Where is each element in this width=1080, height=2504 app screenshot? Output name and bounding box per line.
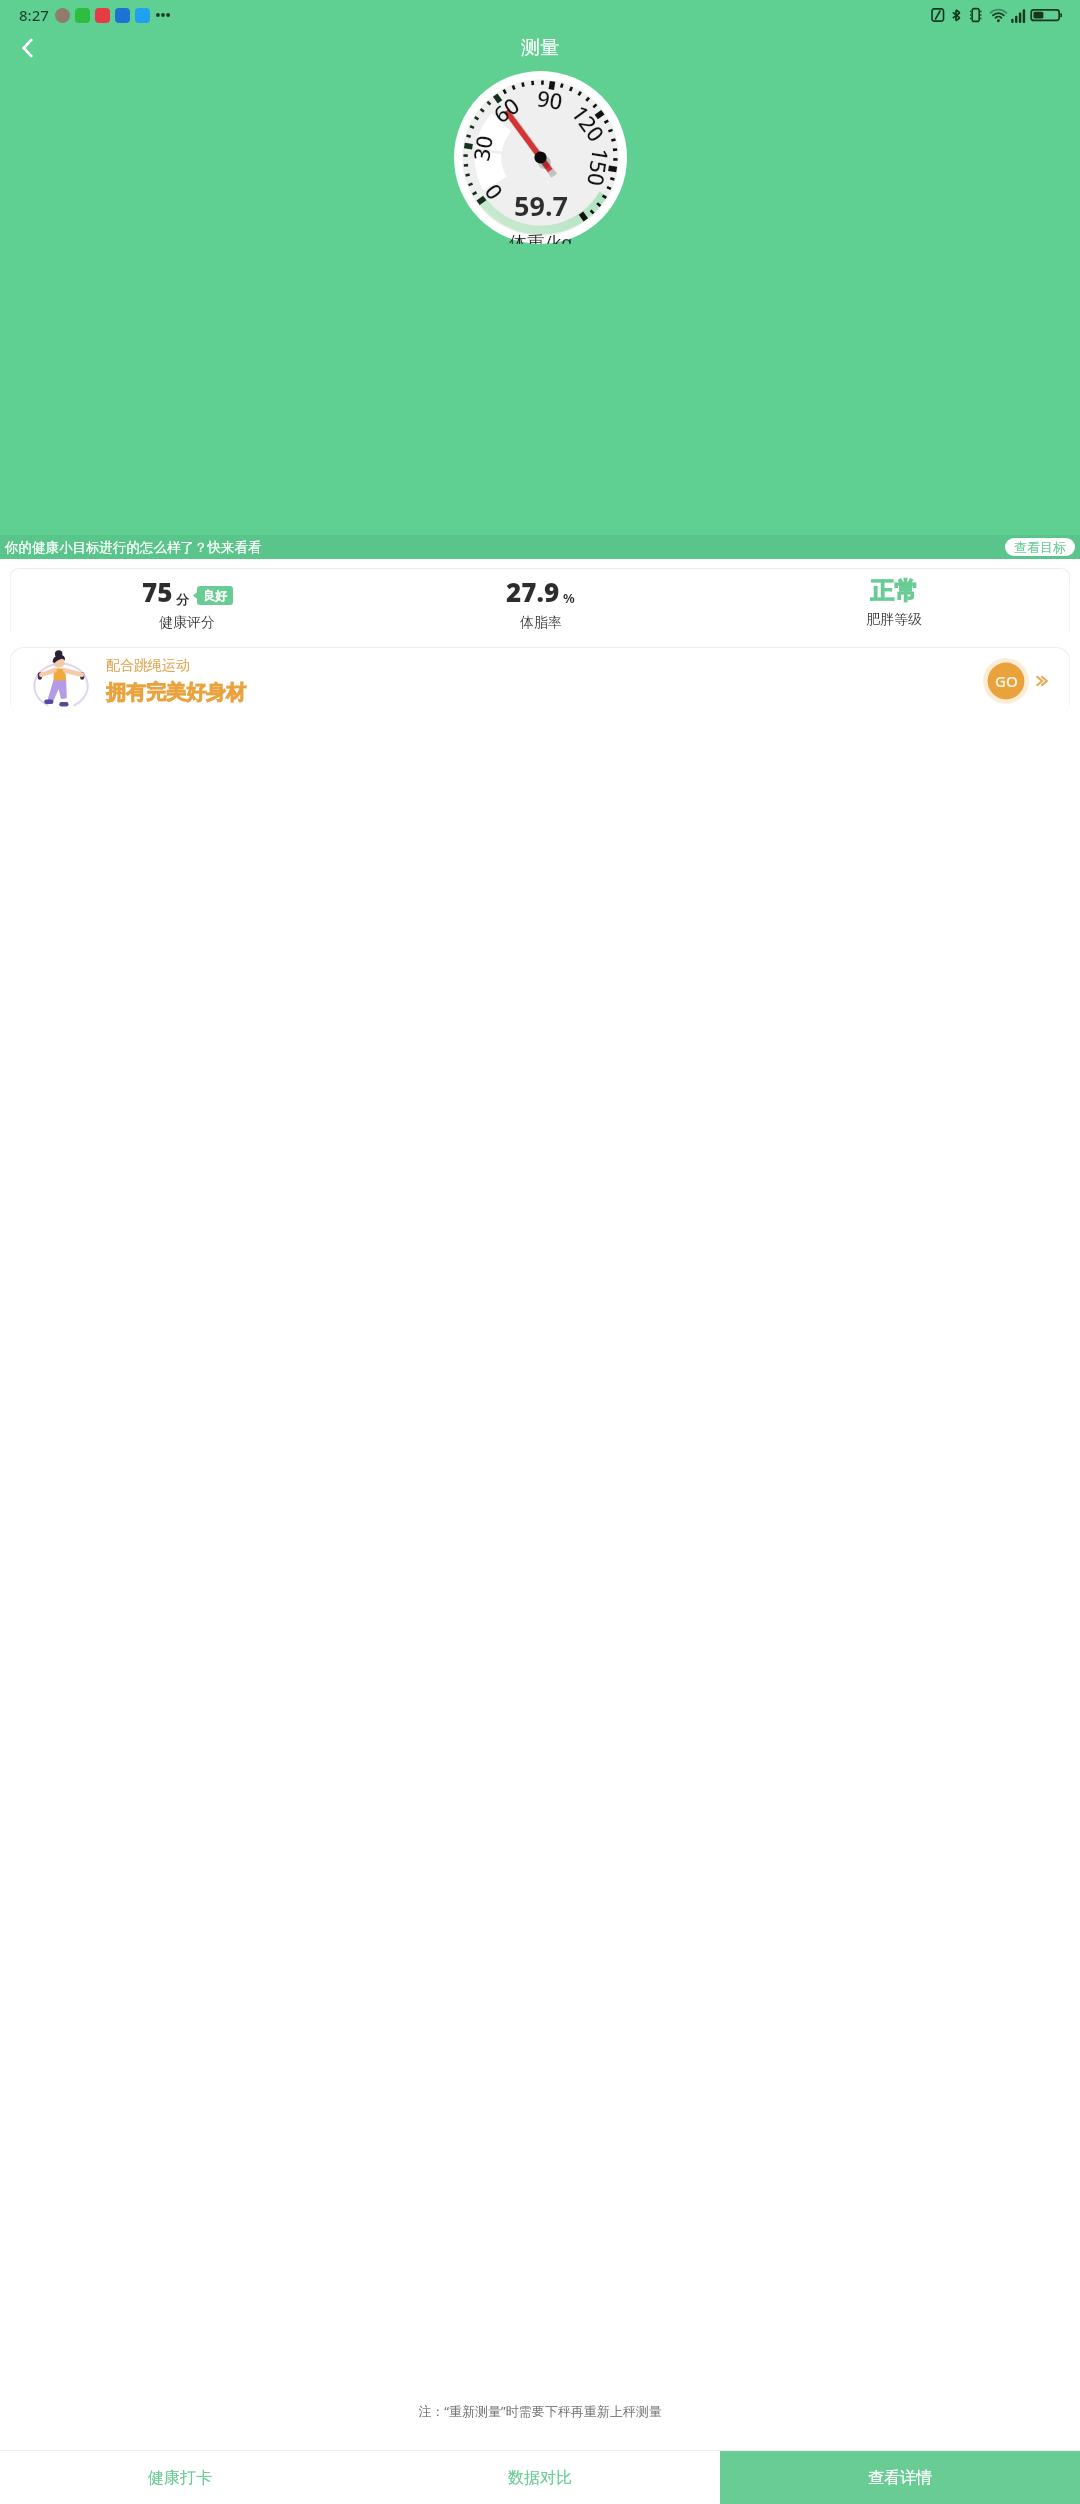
button[interactable]: 查看详情 (720, 2451, 1080, 2504)
staticText: 拥有完美好身材 (106, 680, 246, 705)
staticText: 75 (142, 574, 173, 609)
staticText: 体重/kg (509, 230, 573, 244)
staticText: 注：“重新测量”时需要下秤再重新上秤测量 (0, 2402, 1080, 2420)
staticText: % (563, 589, 575, 607)
staticText: 分 (176, 591, 189, 607)
staticText: 120 (565, 99, 612, 147)
staticText: 健康评分 (159, 614, 215, 632)
staticText: 150 (581, 146, 617, 188)
staticText: 60 (487, 89, 525, 129)
staticText: 配合跳绳运动 (106, 657, 190, 675)
button[interactable]: 数据对比 (360, 2451, 720, 2504)
staticText: 良好 (203, 588, 227, 603)
staticText: 查看详情 (868, 2468, 932, 2488)
staticText: GO (995, 671, 1018, 691)
staticText: 正常 (870, 576, 918, 606)
staticText: 查看目标 (1014, 539, 1066, 555)
staticText: 30 (465, 133, 499, 163)
button[interactable]: GO (983, 658, 1029, 704)
staticText: 你的健康小目标进行的怎么样了？快来看看 (5, 539, 262, 556)
button[interactable]: 75 (10, 567, 1070, 638)
staticText: 体脂率 (520, 614, 562, 632)
staticText: 27.9 (506, 574, 560, 609)
staticText: 59.7 (514, 187, 568, 224)
staticText: 肥胖等级 (866, 611, 922, 629)
button[interactable]: 你的健康小目标进行的怎么样了？快来看看 (0, 535, 1080, 559)
button[interactable]: 健康打卡 (0, 2451, 360, 2504)
staticText: 健康打卡 (148, 2468, 212, 2488)
staticText: 90 (535, 82, 565, 116)
button[interactable]: 配合跳绳运动 (10, 646, 1070, 716)
staticText: 0 (477, 178, 509, 206)
staticText: 8:27 (19, 5, 49, 25)
staticText: 数据对比 (508, 2468, 572, 2488)
staticText: 测量 (521, 36, 559, 60)
button[interactable]: Back (11, 31, 45, 65)
button[interactable]: 查看目标 (1005, 538, 1075, 556)
